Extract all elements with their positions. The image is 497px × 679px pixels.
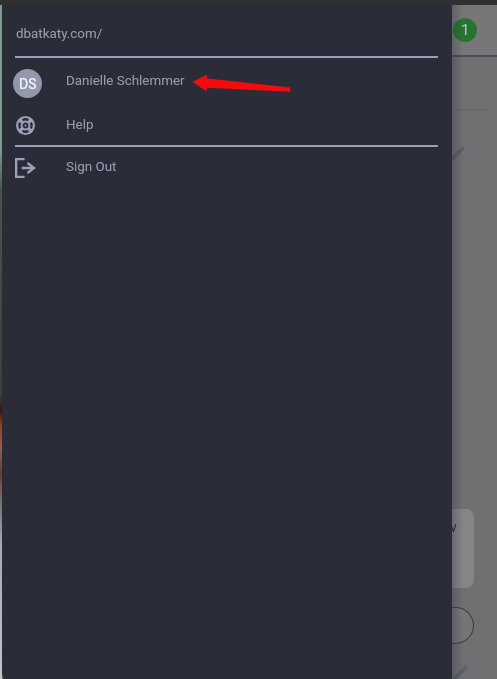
staticText: dbatkaty.com/ <box>16 26 103 42</box>
button[interactable]: Help <box>2 107 452 143</box>
staticText: Sign Out <box>66 159 117 175</box>
staticText: Help <box>66 117 94 133</box>
button[interactable]: Notifications, 1 new <box>453 18 477 42</box>
button[interactable]: DS <box>2 63 452 99</box>
staticText: Danielle Schlemmer <box>66 73 185 89</box>
button[interactable]: Add <box>437 607 474 644</box>
staticText: 1 <box>461 21 470 39</box>
staticText: DS <box>19 76 37 92</box>
button[interactable]: Sign Out <box>2 149 452 185</box>
staticText: v <box>450 519 457 535</box>
other: Callout arrow <box>0 0 497 679</box>
